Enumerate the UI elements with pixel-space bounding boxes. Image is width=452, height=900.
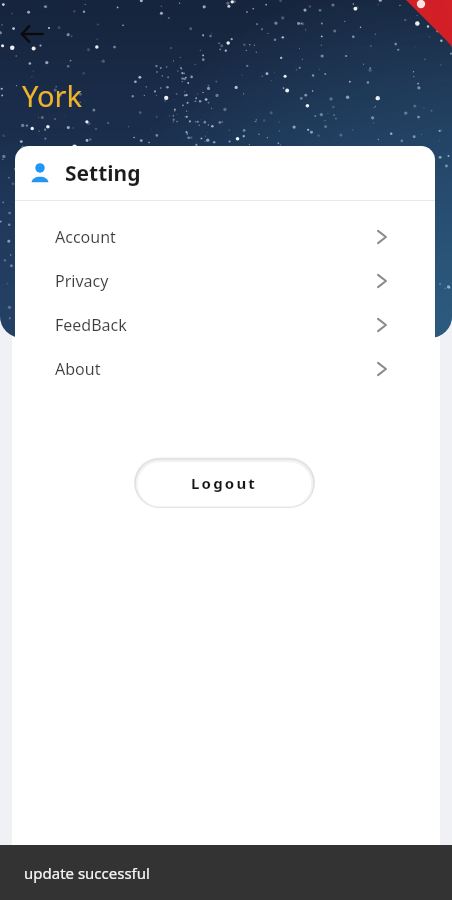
- button[interactable]: FeedBack: [15, 303, 435, 347]
- button[interactable]: About: [15, 347, 435, 391]
- button[interactable]: Back: [8, 10, 56, 58]
- button[interactable]: Privacy: [15, 259, 435, 303]
- staticText: update successful: [24, 863, 150, 883]
- staticText: Logout: [191, 473, 258, 493]
- button[interactable]: update successful: [0, 845, 452, 900]
- button[interactable]: Setting: [15, 146, 435, 200]
- staticText: York: [22, 76, 82, 115]
- staticText: Account: [55, 226, 116, 248]
- staticText: FeedBack: [55, 314, 127, 336]
- button[interactable]: Account: [15, 215, 435, 259]
- staticText: Privacy: [55, 270, 109, 292]
- staticText: Setting: [65, 159, 141, 188]
- staticText: About: [55, 358, 101, 380]
- button[interactable]: Logout: [134, 457, 315, 508]
